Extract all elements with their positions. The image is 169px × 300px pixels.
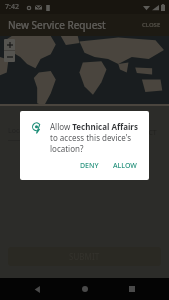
- staticText: Allow Technical Affairs to access this d…: [50, 121, 139, 154]
- button[interactable]: Back: [26, 278, 48, 300]
- staticText: Location: [8, 126, 37, 136]
- button[interactable]: Home: [74, 278, 96, 300]
- button[interactable]: DENY: [74, 158, 105, 174]
- staticText: SELECT: [133, 128, 157, 138]
- staticText: New Service Request: [8, 18, 106, 32]
- button[interactable]: SELECT: [129, 124, 161, 142]
- button[interactable]: Zoom out: [4, 51, 15, 62]
- staticText: DENY: [80, 161, 99, 171]
- staticText: CLOSE: [142, 21, 161, 29]
- button[interactable]: CLOSE: [134, 17, 169, 33]
- staticText: ALLOW: [113, 161, 137, 171]
- button[interactable]: Zoom in: [4, 39, 15, 50]
- button[interactable]: Recents: [121, 278, 143, 300]
- staticText: 7:42: [5, 2, 19, 12]
- button[interactable]: ALLOW: [107, 158, 143, 174]
